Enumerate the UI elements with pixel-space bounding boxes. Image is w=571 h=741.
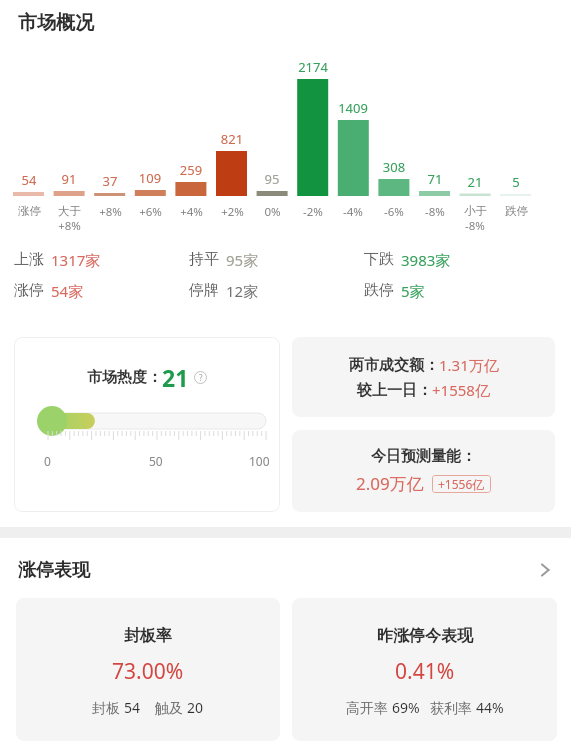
staticText: 1317家 xyxy=(51,250,101,270)
staticText: 持平 xyxy=(189,250,219,269)
staticText: 54 xyxy=(7,171,51,189)
staticText: 小于 xyxy=(464,204,487,218)
staticText: 5家 xyxy=(401,281,425,301)
staticText: -6% xyxy=(384,204,404,220)
staticText: 0% xyxy=(264,204,281,220)
staticText: 21 xyxy=(162,362,189,393)
staticText: 较上一日： xyxy=(357,381,432,400)
staticText: 涨停表现 xyxy=(18,559,90,582)
staticText: 1409 xyxy=(331,99,375,117)
staticText: 0.41% xyxy=(395,657,455,686)
staticText: 3983家 xyxy=(401,250,451,270)
staticText: +2% xyxy=(221,204,244,220)
staticText: +1558亿 xyxy=(432,380,490,400)
staticText: 1.31万亿 xyxy=(439,355,499,375)
staticText: 259 xyxy=(169,161,213,179)
staticText: -4% xyxy=(343,204,363,220)
staticText: 高开率 xyxy=(346,698,392,717)
staticText: -8% xyxy=(465,218,485,234)
staticText: 50 xyxy=(149,453,163,469)
staticText: +8% xyxy=(99,204,122,220)
staticText: 封板 xyxy=(92,698,124,717)
staticText: 37 xyxy=(88,172,132,190)
staticText: 2174 xyxy=(291,58,335,76)
staticText: +8% xyxy=(58,218,81,234)
staticText: 100 xyxy=(249,453,270,469)
staticText: 跌停 xyxy=(364,281,394,300)
staticText: 54家 xyxy=(51,281,84,301)
staticText: 市场热度： xyxy=(87,368,162,387)
staticText: 54 xyxy=(124,698,141,717)
staticText: 下跌 xyxy=(364,250,394,269)
staticText: 308 xyxy=(372,158,416,176)
staticText: 上涨 xyxy=(14,250,44,269)
staticText: 停牌 xyxy=(189,281,219,300)
staticText: 95家 xyxy=(226,250,259,270)
staticText: 触及 xyxy=(155,698,187,717)
staticText: 20 xyxy=(187,698,204,717)
button[interactable]: 今日预测量能： xyxy=(292,430,555,512)
staticText: +1556亿 xyxy=(438,476,485,492)
staticText: 91 xyxy=(47,170,91,188)
staticText: ? xyxy=(199,372,203,383)
staticText: -8% xyxy=(425,204,445,220)
staticText: 涨停 xyxy=(14,281,44,300)
button[interactable]: 涨停表现 xyxy=(0,548,571,592)
staticText: 5 xyxy=(494,173,538,191)
button[interactable]: 昨涨停今表现 xyxy=(292,598,557,741)
staticText: 跌停 xyxy=(505,204,528,218)
staticText: -2% xyxy=(303,204,323,220)
staticText: 95 xyxy=(250,170,294,188)
staticText: 昨涨停今表现 xyxy=(377,626,473,646)
button[interactable]: 帮助 xyxy=(194,371,207,384)
other: 查看更多 xyxy=(535,560,555,580)
button[interactable]: 两市成交额： xyxy=(292,337,555,417)
staticText: 44% xyxy=(476,698,504,717)
staticText: 封板率 xyxy=(124,626,172,646)
staticText: 2.09万亿 xyxy=(356,472,424,495)
staticText: +6% xyxy=(139,204,162,220)
staticText: 0 xyxy=(44,453,51,469)
staticText: 109 xyxy=(128,169,172,187)
staticText: 大于 xyxy=(58,204,81,218)
staticText: 821 xyxy=(210,130,254,148)
staticText: 涨停 xyxy=(18,204,41,218)
staticText: 获利率 xyxy=(430,698,476,717)
button[interactable]: 市场热度： xyxy=(14,337,280,512)
staticText: 两市成交额： xyxy=(349,356,439,375)
button[interactable]: 封板率 xyxy=(16,598,280,741)
staticText: +4% xyxy=(180,204,203,220)
staticText: 今日预测量能： xyxy=(371,447,476,466)
staticText: 市场概况 xyxy=(18,11,94,35)
staticText: 71 xyxy=(413,170,457,188)
staticText: 12家 xyxy=(226,281,259,301)
staticText: 73.00% xyxy=(112,657,184,686)
staticText: 21 xyxy=(453,173,497,191)
staticText: 69% xyxy=(392,698,420,717)
